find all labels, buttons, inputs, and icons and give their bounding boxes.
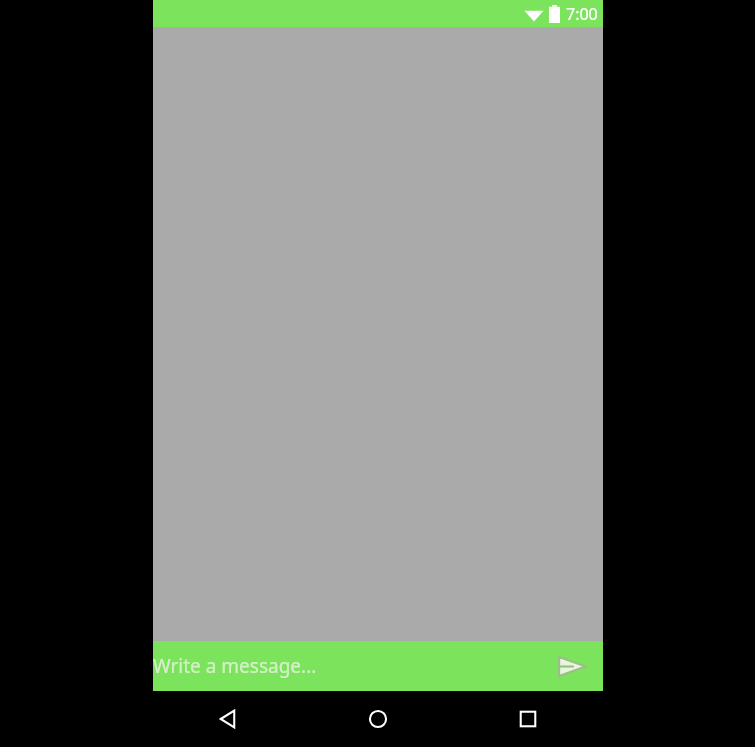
button[interactable]: Home: [303, 691, 453, 747]
button[interactable]: Send: [541, 641, 603, 691]
staticText: Write a message...: [153, 653, 317, 679]
staticText: 7:00: [566, 3, 598, 25]
button[interactable]: Recents: [453, 691, 603, 747]
button[interactable]: Write a message...: [153, 641, 541, 691]
button[interactable]: Back: [153, 691, 303, 747]
